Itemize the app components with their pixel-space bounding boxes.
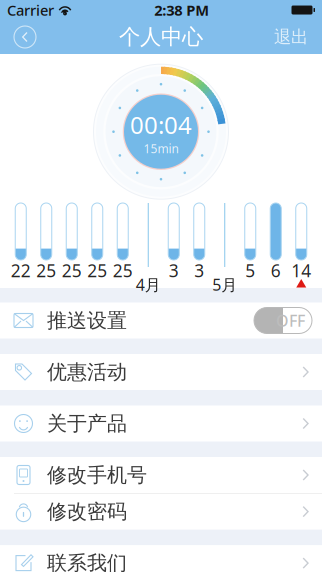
button[interactable]: 联系我们 (0, 545, 322, 572)
staticText: Carrier (7, 0, 54, 20)
staticText: 退出 (274, 26, 308, 48)
button[interactable]: 优惠活动 (0, 354, 322, 390)
staticText: 5 (245, 259, 255, 282)
staticText: 25 (36, 259, 56, 282)
staticText: 联系我们 (47, 551, 127, 572)
staticText: 推送设置 (47, 308, 127, 333)
button[interactable]: Back (10, 22, 40, 52)
staticText: 修改手机号 (47, 463, 147, 487)
staticText: 优惠活动 (47, 360, 127, 384)
staticText: 3 (194, 259, 204, 282)
staticText: 2:38 PM (154, 0, 209, 20)
staticText: 25 (113, 259, 133, 282)
staticText: 3 (169, 259, 179, 282)
staticText: 6 (271, 259, 281, 282)
staticText: 25 (87, 259, 107, 282)
staticText: 个人中心 (119, 24, 203, 50)
button[interactable]: 退出 (270, 22, 312, 52)
button[interactable]: 关于产品 (0, 405, 322, 441)
staticText: 修改密码 (47, 499, 127, 524)
staticText: 15min (143, 141, 178, 157)
staticText: OFF (276, 310, 305, 331)
button[interactable]: 推送设置 (0, 302, 322, 338)
staticText: 25 (62, 259, 82, 282)
staticText: 00:04 (130, 109, 192, 141)
staticText: 14 (291, 259, 311, 282)
button[interactable]: 修改手机号 (0, 457, 322, 493)
staticText: 4月 (136, 274, 161, 295)
button[interactable]: 修改密码 (0, 494, 322, 530)
staticText: 关于产品 (47, 411, 127, 436)
staticText: 5月 (212, 274, 237, 295)
staticText: 22 (11, 259, 31, 282)
